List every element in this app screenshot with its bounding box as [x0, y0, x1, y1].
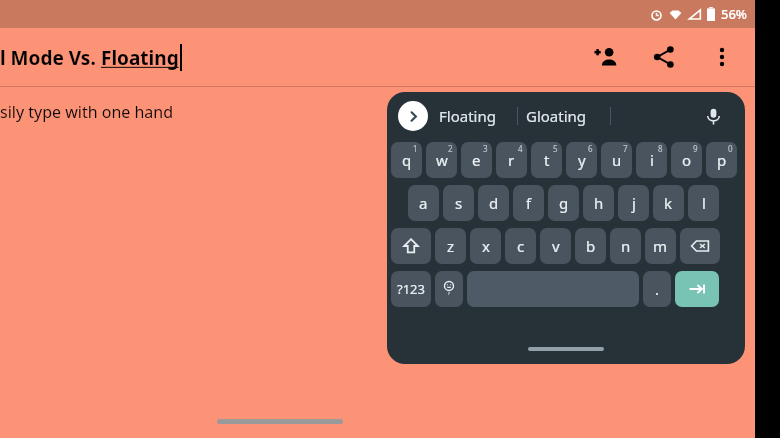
staticText: l	[702, 193, 706, 213]
button[interactable]: Emoji	[435, 271, 463, 307]
button[interactable]: Enter	[675, 271, 719, 307]
button[interactable]: c	[505, 228, 536, 264]
button[interactable]: Gloating	[526, 96, 587, 136]
button[interactable]: b	[575, 228, 606, 264]
staticText: 3	[483, 143, 488, 154]
button[interactable]: l	[688, 185, 719, 221]
staticText: 1	[413, 143, 418, 154]
staticText: h	[594, 193, 604, 213]
button[interactable]: k	[653, 185, 684, 221]
staticText: o	[682, 150, 692, 170]
button[interactable]: v	[540, 228, 571, 264]
button[interactable]: ?123	[391, 271, 431, 307]
staticText: q	[402, 150, 412, 170]
staticText: f	[526, 193, 532, 213]
button[interactable]: g	[548, 185, 579, 221]
staticText: p	[717, 150, 727, 170]
button[interactable]: f	[513, 185, 544, 221]
staticText: 8	[658, 143, 663, 154]
staticText: 4	[518, 143, 523, 154]
staticText: 9	[693, 143, 698, 154]
staticText: x	[482, 236, 490, 256]
staticText: i	[650, 150, 654, 170]
staticText: j	[632, 193, 636, 213]
staticText: 7	[623, 143, 628, 154]
staticText: sily type with one hand	[0, 101, 174, 123]
staticText: .	[655, 279, 660, 299]
staticText: g	[559, 193, 569, 213]
staticText: m	[653, 236, 668, 256]
staticText: l Mode Vs.	[0, 45, 101, 71]
staticText: u	[612, 150, 622, 170]
button[interactable]: i	[636, 142, 667, 178]
staticText: Gloating	[526, 106, 587, 126]
button[interactable]: More options	[703, 38, 741, 76]
button[interactable]: m	[645, 228, 676, 264]
staticText: 56%	[721, 5, 747, 23]
staticText: 6	[588, 143, 593, 154]
staticText: c	[517, 236, 525, 256]
button[interactable]: t	[531, 142, 562, 178]
staticText: a	[419, 193, 428, 213]
button[interactable]: s	[443, 185, 474, 221]
button[interactable]: y	[566, 142, 597, 178]
staticText: ?123	[397, 280, 425, 298]
staticText: z	[447, 236, 455, 256]
button[interactable]: a	[408, 185, 439, 221]
button[interactable]: Add person	[587, 38, 625, 76]
button[interactable]: d	[478, 185, 509, 221]
button[interactable]: Backspace	[680, 228, 720, 264]
staticText: s	[455, 193, 463, 213]
button[interactable]: r	[496, 142, 527, 178]
button[interactable]: e	[461, 142, 492, 178]
staticText: b	[586, 236, 596, 256]
button[interactable]: j	[618, 185, 649, 221]
button[interactable]: n	[610, 228, 641, 264]
staticText: d	[489, 193, 499, 213]
button[interactable]: o	[671, 142, 702, 178]
staticText: 2	[448, 143, 453, 154]
staticText: Floating	[101, 45, 179, 71]
button[interactable]: Share	[645, 38, 683, 76]
staticText: v	[552, 236, 560, 256]
button[interactable]: Floating	[439, 96, 496, 136]
button[interactable]: q	[391, 142, 422, 178]
button[interactable]: .	[643, 271, 671, 307]
staticText: y	[578, 150, 586, 170]
staticText: 0	[728, 143, 733, 154]
button[interactable]: Space	[467, 271, 639, 307]
button[interactable]: x	[470, 228, 501, 264]
button[interactable]: u	[601, 142, 632, 178]
button[interactable]: w	[426, 142, 457, 178]
button[interactable]: z	[435, 228, 466, 264]
staticText: r	[508, 150, 515, 170]
staticText: 5	[553, 143, 558, 154]
button[interactable]: Shift	[391, 228, 431, 264]
staticText: t	[544, 150, 550, 170]
staticText: n	[621, 236, 631, 256]
staticText: Floating	[439, 106, 496, 126]
staticText: k	[664, 193, 673, 213]
staticText: e	[472, 150, 481, 170]
button[interactable]: h	[583, 185, 614, 221]
staticText: w	[436, 150, 448, 170]
button[interactable]: Voice input	[697, 100, 729, 132]
button[interactable]: Expand keyboard	[398, 101, 428, 131]
button[interactable]: p	[706, 142, 737, 178]
